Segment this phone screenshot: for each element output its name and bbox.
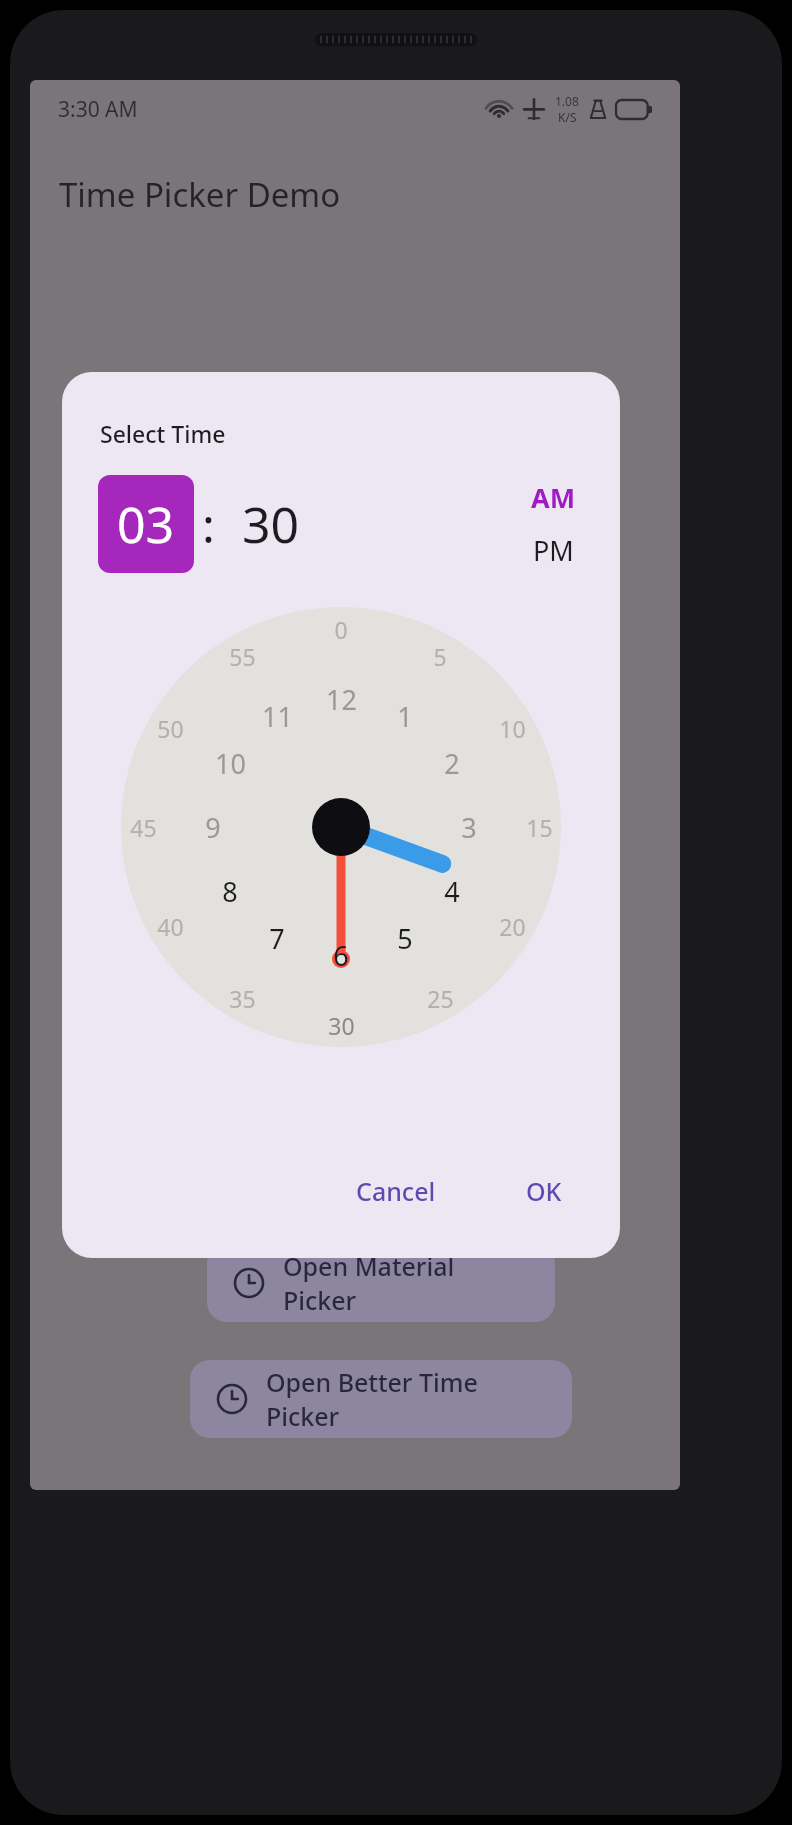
staticText: PM [533, 532, 574, 569]
button[interactable]: Open Material Picker [207, 1244, 555, 1322]
staticText: Open Better Time Picker [266, 1365, 546, 1433]
button[interactable]: Open Better Time Picker [190, 1360, 572, 1438]
staticText: 3:30 AM [58, 95, 138, 124]
staticText: 30 [328, 1010, 355, 1041]
staticText: Time Picker Demo [59, 172, 341, 217]
staticText: K/S [558, 109, 577, 125]
staticText: OK [526, 1174, 562, 1208]
staticText: 1.08 [555, 93, 579, 109]
staticText: 1 [397, 698, 413, 735]
staticText: 15 [526, 812, 553, 843]
staticText: 55 [229, 641, 256, 672]
staticText: Select Time [100, 418, 226, 449]
staticText: 12 [326, 681, 357, 718]
staticText: 7 [269, 920, 285, 957]
button[interactable]: PM [527, 529, 580, 572]
button[interactable]: AM [525, 476, 582, 519]
staticText: 50 [157, 713, 184, 744]
staticText: 10 [215, 745, 246, 782]
staticText: 25 [427, 983, 454, 1014]
staticText: 2 [444, 745, 460, 782]
staticText: : [202, 492, 215, 557]
staticText: 35 [229, 983, 256, 1014]
staticText: 4 [444, 873, 460, 910]
staticText: Cancel [356, 1174, 436, 1208]
staticText: 0 [334, 614, 348, 645]
staticText: 8 [222, 873, 238, 910]
staticText: 20 [499, 911, 526, 942]
staticText: 5 [397, 920, 413, 957]
staticText: 9 [205, 809, 221, 846]
staticText: 3 [461, 809, 477, 846]
staticText: 5 [433, 641, 447, 672]
staticText: 30 [242, 490, 300, 558]
staticText: 6 [333, 937, 349, 974]
staticText: 03 [117, 490, 175, 558]
button[interactable]: 30 [223, 475, 319, 573]
staticText: 45 [130, 812, 157, 843]
button[interactable]: 03 [98, 475, 194, 573]
staticText: Open Material Picker [283, 1249, 529, 1317]
staticText: AM [531, 479, 576, 516]
staticText: 11 [262, 698, 293, 735]
button[interactable]: Cancel [340, 1164, 452, 1218]
other: Clock face time picker [121, 607, 561, 1047]
staticText: 10 [499, 713, 526, 744]
staticText: 40 [157, 911, 184, 942]
button[interactable]: OK [510, 1164, 578, 1218]
